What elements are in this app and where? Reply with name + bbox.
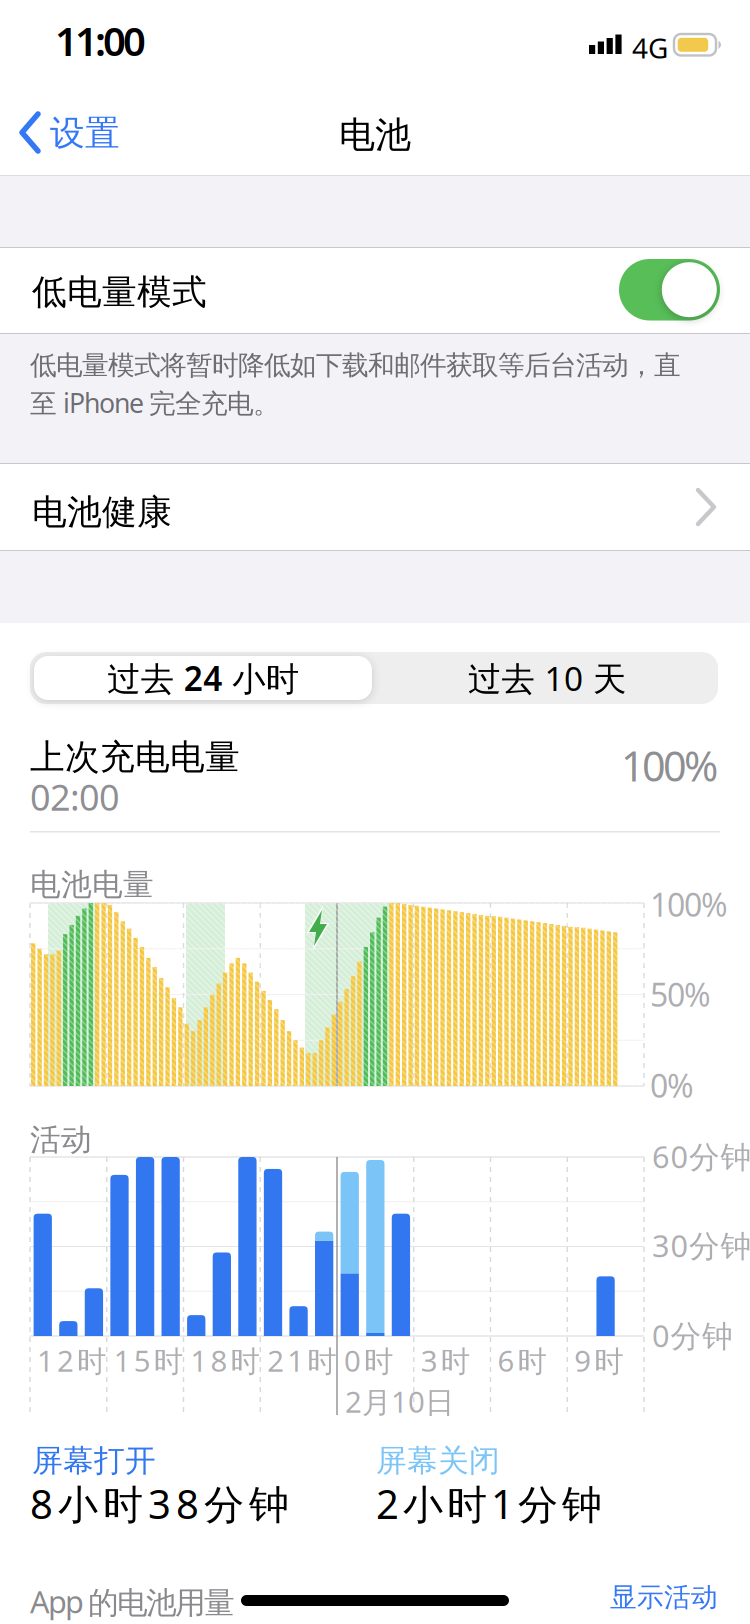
staticText: 屏幕打开 — [32, 1442, 156, 1480]
staticText: 0分钟 — [652, 1315, 733, 1356]
staticText: 3时 — [421, 1341, 470, 1380]
staticText: 15时 — [114, 1341, 183, 1380]
staticText: 2小时1分钟 — [376, 1477, 602, 1530]
staticText: 21时 — [267, 1341, 336, 1380]
staticText: 0时 — [344, 1341, 393, 1380]
staticText: 过去 10 天 — [468, 656, 626, 700]
staticText: 50% — [650, 973, 711, 1015]
button[interactable]: 设置 — [20, 111, 130, 155]
staticText: 60分钟 — [652, 1136, 750, 1177]
staticText: 设置 — [50, 112, 120, 155]
staticText: 活动 — [30, 1121, 92, 1159]
staticText: 至 iPhone 完全充电。 — [30, 385, 280, 420]
staticText: 6时 — [497, 1341, 546, 1380]
staticText: 02:00 — [30, 773, 120, 821]
staticText: 100% — [621, 738, 718, 793]
staticText: 上次充电电量 — [30, 736, 240, 779]
button[interactable]: 低电量模式 — [619, 259, 720, 320]
staticText: 0% — [650, 1064, 694, 1106]
staticText: 12时 — [37, 1341, 106, 1380]
staticText: App 的电池用量 — [30, 1581, 235, 1622]
staticText: 屏幕关闭 — [376, 1442, 500, 1480]
staticText: 过去 24 小时 — [107, 656, 299, 700]
staticText: 电池健康 — [32, 491, 172, 534]
button[interactable]: 显示活动 — [610, 1581, 718, 1614]
staticText: 8小时38分钟 — [30, 1477, 289, 1530]
button[interactable]: 过去 10 天 — [382, 656, 712, 700]
staticText: 显示活动 — [610, 1581, 718, 1614]
staticText: 9时 — [574, 1341, 623, 1380]
button[interactable]: 电池健康 — [0, 464, 750, 550]
staticText: 30分钟 — [652, 1225, 750, 1266]
button[interactable]: 过去 24 小时 — [34, 656, 372, 700]
staticText: 4G — [632, 29, 668, 66]
staticText: 2月10日 — [345, 1382, 454, 1421]
staticText: 18时 — [190, 1341, 259, 1380]
staticText: 100% — [650, 883, 728, 925]
staticText: 低电量模式 — [32, 271, 207, 314]
staticText: 11:00 — [55, 14, 146, 67]
staticText: 电池 — [339, 113, 411, 157]
staticText: 电池电量 — [30, 866, 154, 904]
staticText: 低电量模式将暂时降低如下载和邮件获取等后台活动，直 — [30, 349, 681, 382]
